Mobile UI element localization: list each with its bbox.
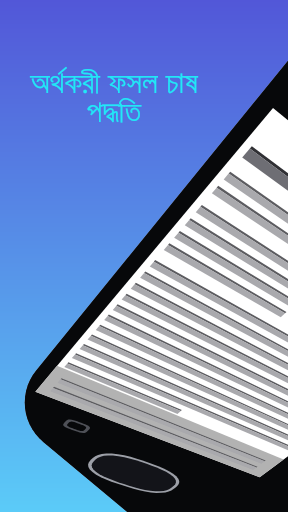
button[interactable]: অর্থকরী ফসল চাষ পদ্ধতি	[30, 60, 198, 129]
